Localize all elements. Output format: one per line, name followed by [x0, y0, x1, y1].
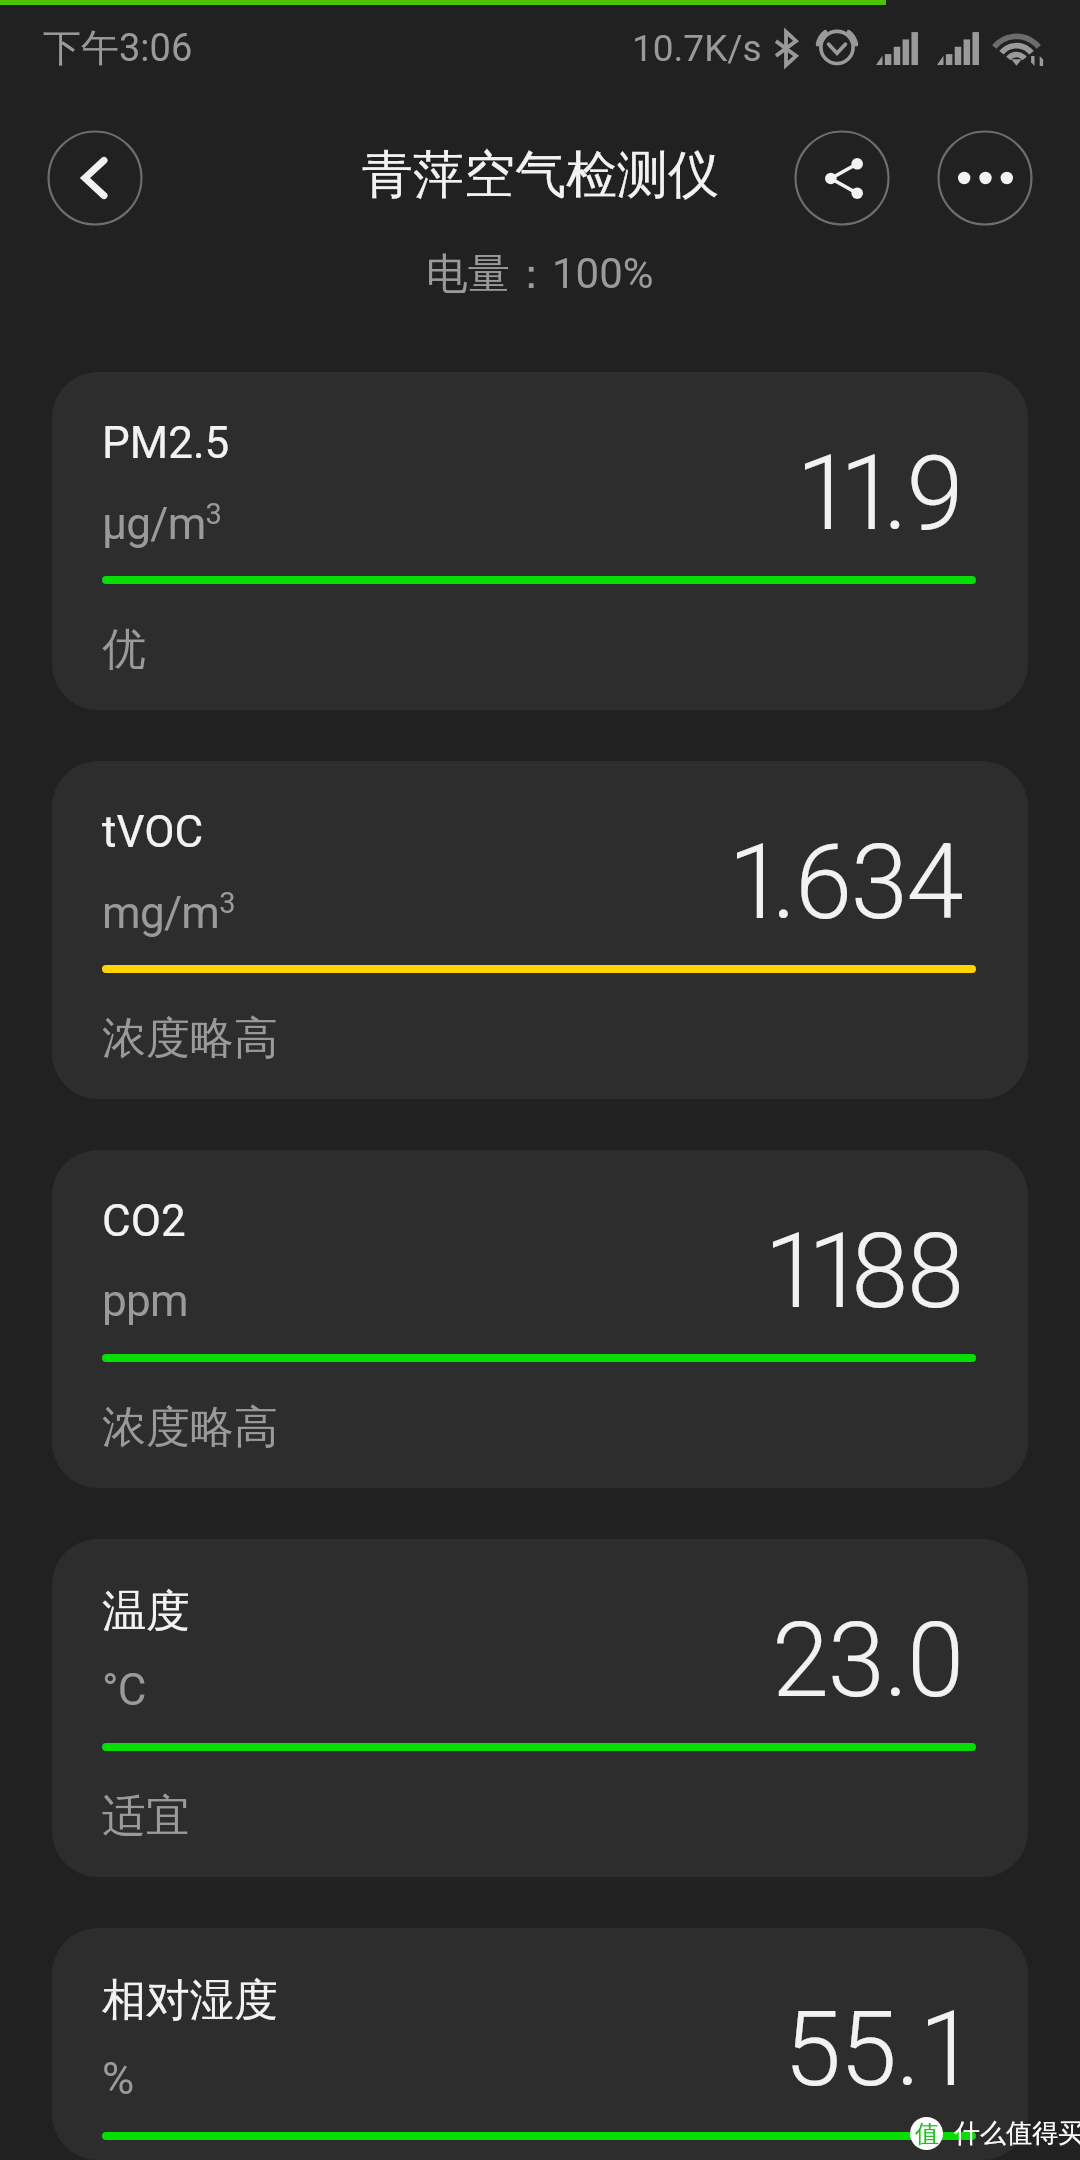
button[interactable]: Share: [794, 130, 890, 226]
staticText: PM2.5: [102, 417, 230, 469]
staticText: 温度: [102, 1584, 190, 1639]
staticText: 浓度略高: [102, 1011, 278, 1066]
button[interactable]: tVOC: [52, 761, 1028, 1099]
staticText: 什么值得买: [954, 2117, 1080, 2150]
button[interactable]: More options: [937, 130, 1033, 226]
staticText: ppm: [102, 1275, 188, 1327]
staticText: 1188: [764, 1211, 963, 1332]
staticText: 优: [102, 622, 146, 677]
staticText: 电量：100%: [426, 248, 654, 301]
button[interactable]: PM2.5: [52, 372, 1028, 710]
staticText: 适宜: [102, 1789, 190, 1844]
staticText: °C: [102, 1664, 146, 1716]
staticText: CO2: [102, 1195, 186, 1247]
staticText: 10.7K/s: [632, 27, 762, 70]
staticText: 1.634: [728, 822, 963, 943]
button[interactable]: 相对湿度: [52, 1928, 1028, 2160]
staticText: 浓度略高: [102, 1400, 278, 1455]
staticText: %: [102, 2053, 134, 2105]
staticText: 相对湿度: [102, 1973, 278, 2028]
staticText: 11.9: [796, 433, 963, 554]
staticText: μg/m3: [102, 497, 222, 549]
staticText: 下午3:06: [43, 24, 193, 72]
button[interactable]: CO2: [52, 1150, 1028, 1488]
staticText: 青萍空气检测仪: [362, 143, 719, 207]
staticText: 值: [915, 2119, 939, 2149]
staticText: mg/m3: [102, 886, 235, 938]
button[interactable]: Back: [47, 130, 143, 226]
staticText: 55.1: [784, 1989, 963, 2110]
staticText: tVOC: [102, 806, 204, 858]
button[interactable]: 温度: [52, 1539, 1028, 1877]
staticText: 23.0: [772, 1600, 963, 1721]
